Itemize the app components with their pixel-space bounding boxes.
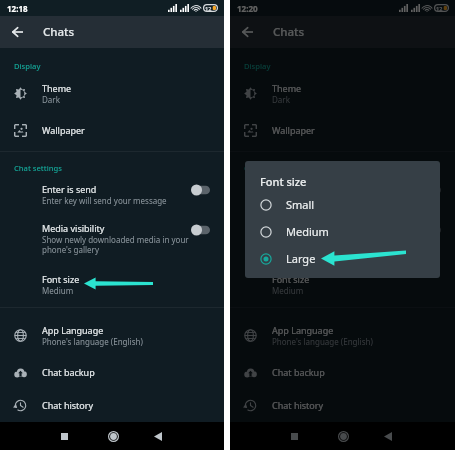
button[interactable]: Small bbox=[245, 191, 440, 218]
staticText: 12:18 bbox=[7, 3, 28, 14]
button[interactable]: Enter is send bbox=[0, 182, 224, 207]
staticText: Medium bbox=[42, 285, 74, 296]
button[interactable]: Recents bbox=[54, 426, 74, 446]
button[interactable]: App Language bbox=[230, 322, 455, 348]
staticText: Small bbox=[286, 197, 315, 212]
button[interactable]: Large bbox=[245, 245, 440, 272]
staticText: 12 bbox=[436, 5, 443, 12]
button[interactable]: Medium bbox=[245, 218, 440, 245]
staticText: Font size bbox=[260, 174, 307, 189]
staticText: Show newly downloaded media in your phon… bbox=[42, 234, 189, 256]
staticText: Chat history bbox=[272, 399, 324, 411]
button[interactable]: Chat history bbox=[230, 393, 455, 417]
staticText: Theme bbox=[42, 82, 72, 94]
staticText: Chat backup bbox=[272, 366, 325, 378]
button[interactable]: Wallpaper bbox=[0, 118, 224, 142]
button[interactable] bbox=[422, 224, 441, 236]
button[interactable] bbox=[191, 224, 210, 236]
staticText: Enter is send bbox=[42, 183, 97, 195]
staticText: App Language bbox=[272, 324, 334, 336]
button[interactable]: Font size bbox=[0, 272, 224, 297]
button[interactable]: Chat history bbox=[0, 393, 224, 417]
staticText: Theme bbox=[272, 82, 302, 94]
staticText: Large bbox=[286, 251, 316, 266]
staticText: Enter key will send your message bbox=[272, 195, 397, 206]
button[interactable]: Wallpaper bbox=[230, 118, 455, 142]
button[interactable]: Chat backup bbox=[0, 360, 224, 384]
staticText: Wallpaper bbox=[272, 124, 315, 136]
button[interactable]: Back bbox=[148, 426, 168, 446]
button[interactable]: Enter is send bbox=[230, 182, 455, 207]
button[interactable]: Media visibility bbox=[0, 220, 224, 257]
button[interactable]: Back bbox=[5, 20, 29, 44]
staticText: Chat settings bbox=[14, 163, 62, 173]
button[interactable] bbox=[422, 184, 441, 196]
staticText: Chat settings bbox=[244, 163, 292, 173]
button[interactable]: App Language bbox=[0, 322, 224, 348]
staticText: Medium bbox=[272, 285, 304, 296]
staticText: Chats bbox=[273, 24, 305, 40]
button[interactable]: Back bbox=[378, 426, 398, 446]
button[interactable]: Home bbox=[332, 425, 354, 447]
staticText: Medium bbox=[286, 224, 329, 239]
staticText: Chat backup bbox=[42, 366, 95, 378]
staticText: Show newly downloaded media in your phon… bbox=[272, 234, 419, 256]
staticText: Enter key will send your message bbox=[42, 195, 167, 206]
staticText: Enter is send bbox=[272, 183, 327, 195]
button[interactable]: Theme bbox=[0, 80, 224, 106]
staticText: Phone's language (English) bbox=[42, 336, 143, 347]
staticText: Chats bbox=[43, 24, 75, 40]
staticText: Dark bbox=[42, 94, 60, 105]
button[interactable]: Chat backup bbox=[230, 360, 455, 384]
button[interactable] bbox=[191, 184, 210, 196]
staticText: Media visibility bbox=[272, 222, 335, 234]
button[interactable]: Back bbox=[235, 20, 259, 44]
button[interactable]: Recents bbox=[284, 426, 304, 446]
staticText: App Language bbox=[42, 324, 104, 336]
button[interactable]: Home bbox=[102, 425, 124, 447]
staticText: Font size bbox=[42, 273, 80, 285]
staticText: 12 bbox=[205, 5, 212, 12]
button[interactable]: Theme bbox=[230, 80, 455, 106]
staticText: Display bbox=[244, 61, 271, 71]
staticText: Wallpaper bbox=[42, 124, 85, 136]
staticText: 12:20 bbox=[237, 3, 258, 14]
staticText: Media visibility bbox=[42, 222, 105, 234]
staticText: Font size bbox=[272, 273, 310, 285]
button[interactable]: Font size bbox=[230, 272, 455, 297]
staticText: Display bbox=[14, 61, 41, 71]
staticText: Chat history bbox=[42, 399, 94, 411]
button[interactable]: Media visibility bbox=[230, 220, 455, 257]
staticText: Phone's language (English) bbox=[272, 336, 373, 347]
staticText: Dark bbox=[272, 94, 290, 105]
